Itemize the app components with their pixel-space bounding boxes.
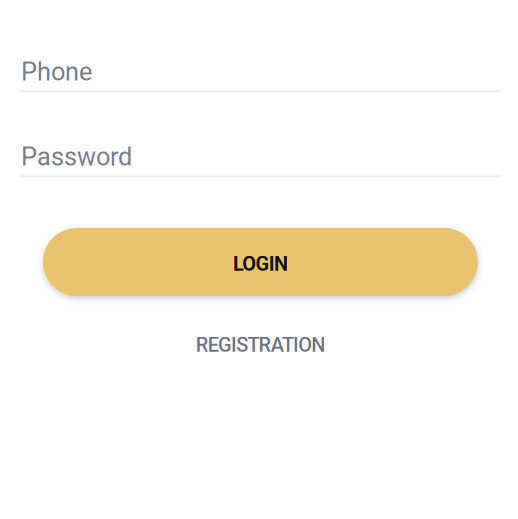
button[interactable]: Phone [20,52,500,93]
button[interactable]: Password [20,137,500,178]
button[interactable]: REGISTRATION [150,327,370,361]
staticText: REGISTRATION [196,333,325,357]
staticText: Password [21,142,132,172]
staticText: Phone [21,57,92,87]
staticText: LOGIN [233,252,288,276]
button[interactable]: LOGIN [43,228,478,296]
